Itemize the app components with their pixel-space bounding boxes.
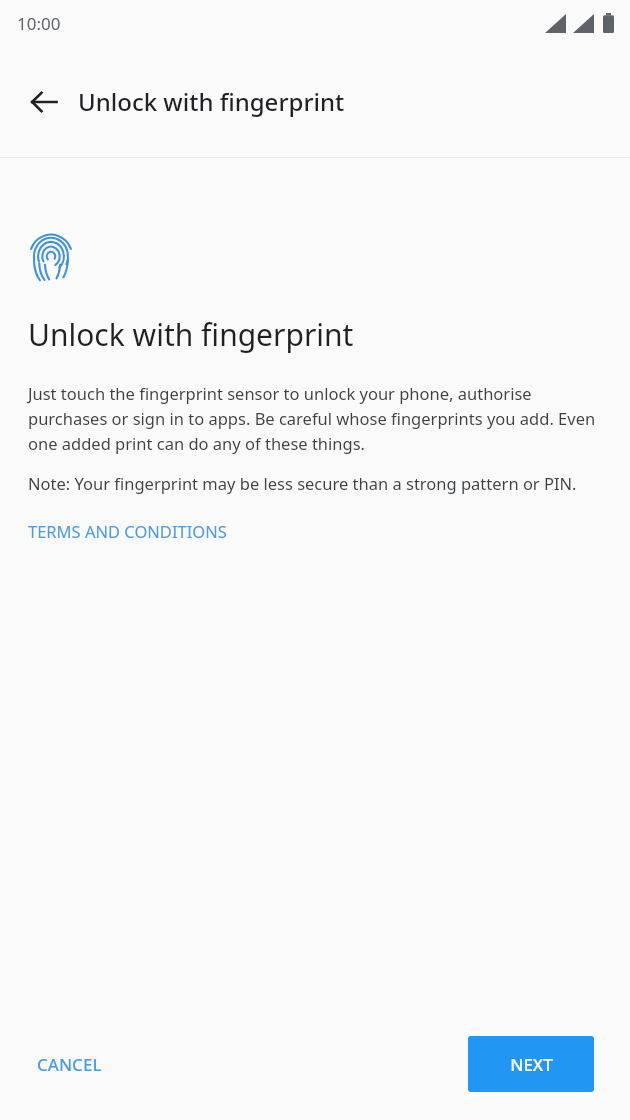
staticText: TERMS AND CONDITIONS [28, 520, 227, 542]
staticText: Unlock with fingerprint [78, 85, 345, 118]
staticText: NEXT [510, 1053, 553, 1076]
button[interactable]: TERMS AND CONDITIONS [28, 516, 227, 546]
button[interactable]: NEXT [468, 1036, 594, 1092]
staticText: 10:00 [17, 12, 61, 35]
button[interactable]: CANCEL [20, 1041, 119, 1088]
button[interactable]: Back [20, 78, 68, 126]
staticText: Unlock with fingerprint [28, 314, 354, 355]
staticText: Just touch the fingerprint sensor to unl… [28, 382, 602, 454]
staticText: Note: Your fingerprint may be less secur… [28, 472, 577, 494]
staticText: CANCEL [37, 1053, 102, 1076]
